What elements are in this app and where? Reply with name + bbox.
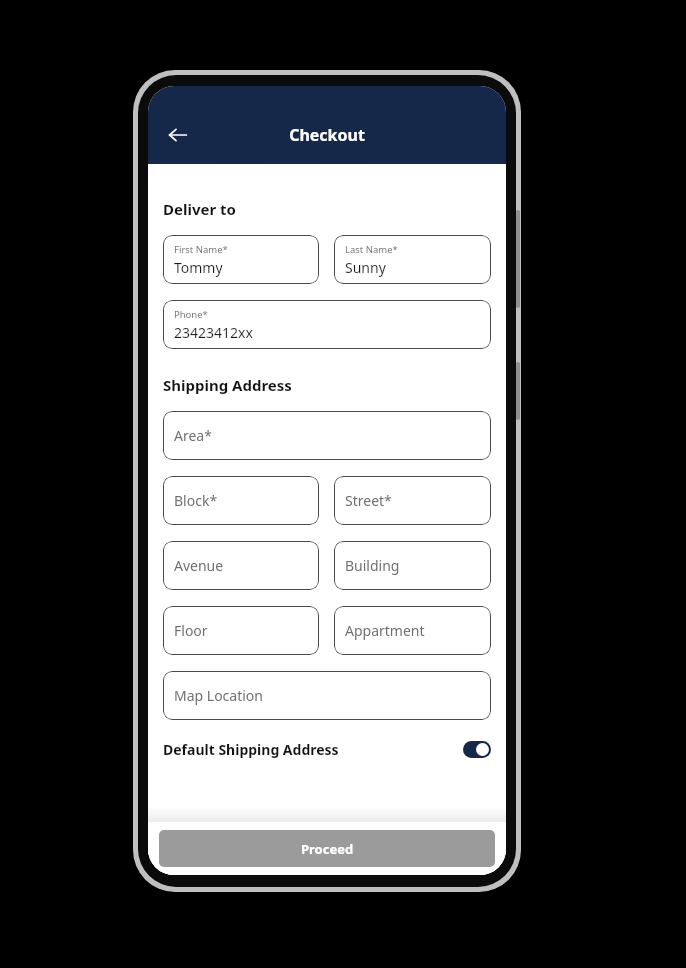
- staticText: Deliver to: [163, 199, 236, 219]
- button[interactable]: Block*: [163, 476, 319, 525]
- staticText: Map Location: [174, 686, 263, 705]
- staticText: Proceed: [301, 840, 354, 858]
- staticText: Building: [345, 556, 400, 575]
- button[interactable]: Default Shipping Address: [163, 732, 491, 766]
- button[interactable]: Avenue: [163, 541, 319, 590]
- staticText: Avenue: [174, 556, 224, 575]
- staticText: Floor: [174, 621, 208, 640]
- staticText: Phone*: [174, 308, 208, 321]
- button[interactable]: Area*: [163, 411, 491, 460]
- button[interactable]: Floor: [163, 606, 319, 655]
- staticText: Default Shipping Address: [163, 740, 339, 759]
- staticText: Sunny: [345, 258, 386, 277]
- button[interactable]: First Name*: [163, 235, 319, 284]
- staticText: Shipping Address: [163, 375, 292, 395]
- staticText: Street*: [345, 491, 392, 510]
- button[interactable]: Appartment: [334, 606, 491, 655]
- button[interactable]: Street*: [334, 476, 491, 525]
- button[interactable]: Last Name*: [334, 235, 491, 284]
- button[interactable]: Proceed: [159, 830, 495, 867]
- button[interactable]: Building: [334, 541, 491, 590]
- staticText: Tommy: [174, 258, 223, 277]
- staticText: Checkout: [289, 124, 365, 146]
- button[interactable]: Phone*: [163, 300, 491, 349]
- staticText: Block*: [174, 491, 218, 510]
- staticText: 23423412xx: [174, 323, 253, 342]
- button[interactable]: Back: [156, 113, 200, 157]
- button[interactable]: Map Location: [163, 671, 491, 720]
- staticText: Area*: [174, 426, 212, 445]
- staticText: Last Name*: [345, 243, 398, 256]
- staticText: Appartment: [345, 621, 425, 640]
- staticText: First Name*: [174, 243, 228, 256]
- button[interactable]: Default shipping address toggle: [463, 741, 491, 758]
